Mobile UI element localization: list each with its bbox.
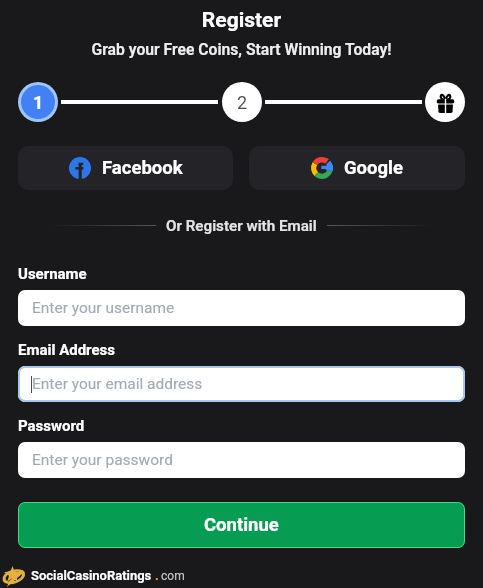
button[interactable]: Facebook xyxy=(18,146,233,190)
staticText: Continue xyxy=(204,514,279,536)
button[interactable]: 2 xyxy=(222,82,262,122)
staticText: Google xyxy=(344,157,403,179)
button[interactable]: Google xyxy=(249,146,465,190)
staticText: SocialCasinoRatings xyxy=(31,568,152,583)
staticText: Username xyxy=(18,265,465,283)
staticText: Email Address xyxy=(18,341,465,359)
staticText: com xyxy=(161,569,185,583)
staticText: 1 xyxy=(33,92,44,113)
staticText: Enter your email address xyxy=(32,375,203,393)
staticText: Facebook xyxy=(102,157,183,179)
staticText: . xyxy=(155,568,159,583)
button[interactable]: Enter your email address xyxy=(18,366,465,402)
staticText: Grab your Free Coins, Start Winning Toda… xyxy=(0,40,483,58)
staticText: Password xyxy=(18,417,465,435)
button[interactable]: Enter your username xyxy=(18,290,465,326)
staticText: Enter your username xyxy=(32,299,175,317)
staticText: 2 xyxy=(237,92,248,113)
button[interactable]: Continue xyxy=(18,502,465,548)
button[interactable]: 1 xyxy=(21,85,55,119)
button[interactable]: Enter your password xyxy=(18,442,465,478)
staticText: Register xyxy=(0,8,483,33)
staticText: Enter your password xyxy=(32,451,173,469)
button[interactable]: Bonus reward xyxy=(425,82,465,122)
staticText: Or Register with Email xyxy=(166,217,317,235)
